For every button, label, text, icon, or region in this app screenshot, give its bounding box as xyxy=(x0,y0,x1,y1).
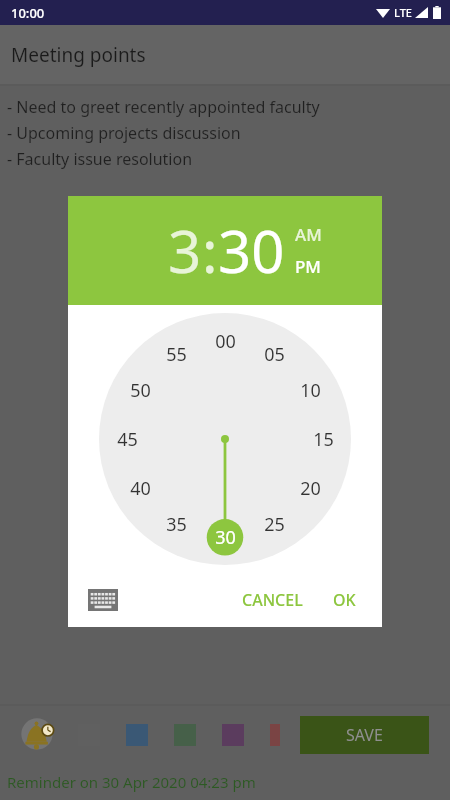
staticText: 50 xyxy=(130,378,151,403)
staticText: 05 xyxy=(264,342,285,367)
button[interactable]: CANCEL xyxy=(236,583,309,617)
staticText: Meeting points xyxy=(11,42,146,68)
staticText: : xyxy=(202,211,218,290)
button[interactable]: AM xyxy=(295,223,322,246)
button[interactable]: PM xyxy=(295,255,321,278)
staticText: - Upcoming projects discussion xyxy=(7,122,241,144)
button[interactable]: 3 xyxy=(168,211,202,290)
staticText: SAVE xyxy=(346,724,383,746)
staticText: 45 xyxy=(117,427,138,452)
staticText: 10 xyxy=(300,378,321,403)
staticText: 10:00 xyxy=(11,4,45,22)
staticText: OK xyxy=(333,589,356,611)
staticText: 25 xyxy=(264,512,285,537)
staticText: 20 xyxy=(300,476,321,501)
button[interactable]: SAVE xyxy=(300,716,429,754)
button[interactable]: OK xyxy=(327,583,362,617)
staticText: 00 xyxy=(215,329,236,354)
staticText: LTE xyxy=(394,5,412,20)
staticText: - Faculty issue resolution xyxy=(7,148,193,170)
staticText: 30 xyxy=(215,525,236,550)
staticText: 15 xyxy=(313,427,334,452)
staticText: 55 xyxy=(166,342,187,367)
button[interactable]: Switch to text input xyxy=(88,589,118,611)
staticText: Reminder on 30 Apr 2020 04:23 pm xyxy=(7,772,256,792)
button[interactable]: 30 xyxy=(218,211,285,290)
staticText: 35 xyxy=(166,512,187,537)
button[interactable]: Set reminder xyxy=(16,713,60,757)
staticText: CANCEL xyxy=(242,589,303,611)
staticText: - Need to greet recently appointed facul… xyxy=(7,96,320,118)
staticText: 40 xyxy=(130,476,151,501)
